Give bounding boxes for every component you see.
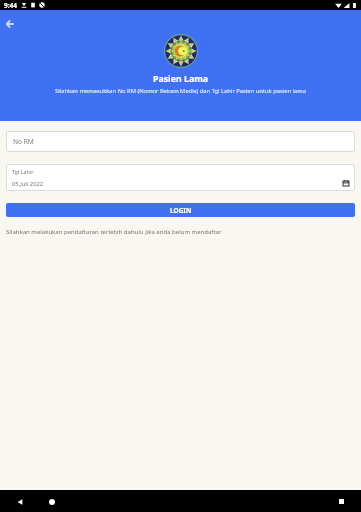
button[interactable]: No RM bbox=[6, 131, 355, 152]
staticText: Silahkan melakukan pendaftaran terlebih … bbox=[6, 228, 222, 236]
button[interactable]: Home bbox=[43, 493, 60, 510]
button[interactable]: Back bbox=[11, 493, 28, 510]
staticText: Silahkan memasukkan No RM (Nomor Rekam M… bbox=[12, 87, 349, 95]
button[interactable]: LOGIN bbox=[6, 203, 355, 217]
staticText: 05.Juli 2022 bbox=[12, 180, 44, 188]
button[interactable]: Back bbox=[0, 13, 21, 35]
staticText: LOGIN bbox=[170, 206, 192, 215]
button[interactable]: Pick date bbox=[340, 177, 352, 189]
staticText: Tgl Lahir bbox=[12, 168, 34, 175]
staticText: 9:44 bbox=[4, 1, 17, 10]
staticText: Pasien Lama bbox=[0, 73, 361, 85]
staticText: No RM bbox=[13, 137, 34, 146]
button[interactable]: Tgl Lahir bbox=[6, 164, 355, 191]
button[interactable]: Recents bbox=[333, 493, 350, 510]
